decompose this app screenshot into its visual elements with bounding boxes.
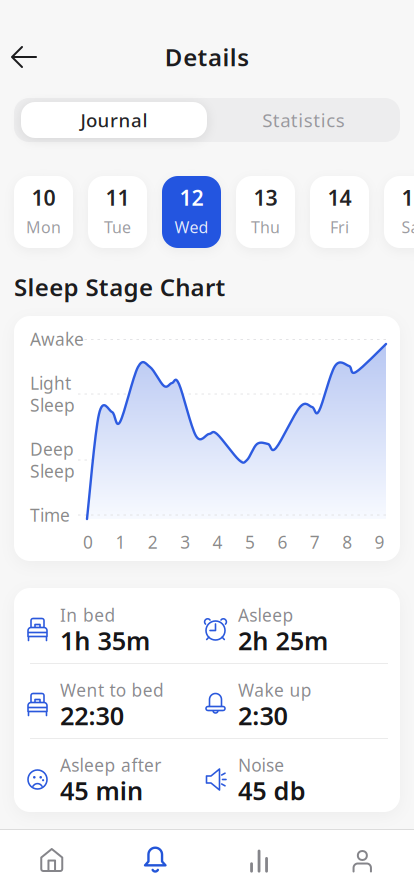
staticText: Asleep <box>238 603 293 626</box>
staticText: Sleep Stage Chart <box>14 271 225 303</box>
button[interactable]: Journal <box>21 102 207 138</box>
staticText: Tue <box>104 216 131 238</box>
staticText: 22:30 <box>60 699 124 732</box>
button[interactable]: Statistics <box>210 98 396 142</box>
staticText: 4 <box>213 530 223 553</box>
staticText: 0 <box>83 530 93 553</box>
staticText: Went to bed <box>60 678 164 701</box>
staticText: 14 <box>327 183 351 212</box>
button[interactable]: 11 <box>88 176 147 248</box>
staticText: 11 <box>105 183 129 212</box>
staticText: Asleep after <box>60 753 161 776</box>
staticText: 45 db <box>238 774 306 807</box>
staticText: Sleep <box>30 459 75 482</box>
button[interactable] <box>1 35 45 79</box>
button[interactable] <box>310 829 414 895</box>
staticText: In bed <box>60 603 115 626</box>
staticText: 9 <box>375 530 385 553</box>
staticText: 2h 25m <box>238 624 328 657</box>
button[interactable] <box>0 829 104 895</box>
staticText: Light <box>30 371 71 394</box>
staticText: 5 <box>245 530 255 553</box>
button[interactable]: 13 <box>236 176 295 248</box>
staticText: 45 min <box>60 774 143 807</box>
staticText: Mon <box>26 216 61 238</box>
button[interactable]: 14 <box>310 176 369 248</box>
staticText: Wake up <box>238 678 312 701</box>
staticText: 1h 35m <box>60 624 150 657</box>
staticText: Deep <box>30 437 74 460</box>
staticText: 1 <box>115 530 125 553</box>
staticText: Statistics <box>262 108 345 132</box>
button[interactable] <box>103 829 207 895</box>
button[interactable]: 12 <box>162 176 221 248</box>
staticText: 8 <box>342 530 352 553</box>
staticText: 3 <box>180 530 190 553</box>
staticText: 10 <box>31 183 55 212</box>
staticText: 12 <box>179 183 203 212</box>
staticText: 13 <box>253 183 277 212</box>
staticText: Journal <box>80 108 147 132</box>
staticText: 15 <box>401 183 414 212</box>
staticText: Sat <box>401 216 414 238</box>
staticText: Noise <box>238 753 284 776</box>
button[interactable]: 15 <box>384 176 414 248</box>
staticText: 6 <box>277 530 287 553</box>
staticText: Wed <box>174 216 208 238</box>
staticText: Awake <box>30 327 84 350</box>
staticText: 2 <box>148 530 158 553</box>
staticText: 2:30 <box>238 699 288 732</box>
button[interactable] <box>207 829 311 895</box>
button[interactable]: 10 <box>14 176 73 248</box>
staticText: Thu <box>251 216 280 238</box>
staticText: Fri <box>330 216 349 238</box>
staticText: Time <box>30 503 70 526</box>
staticText: 7 <box>310 530 320 553</box>
staticText: Details <box>165 41 249 73</box>
staticText: Sleep <box>30 393 75 416</box>
